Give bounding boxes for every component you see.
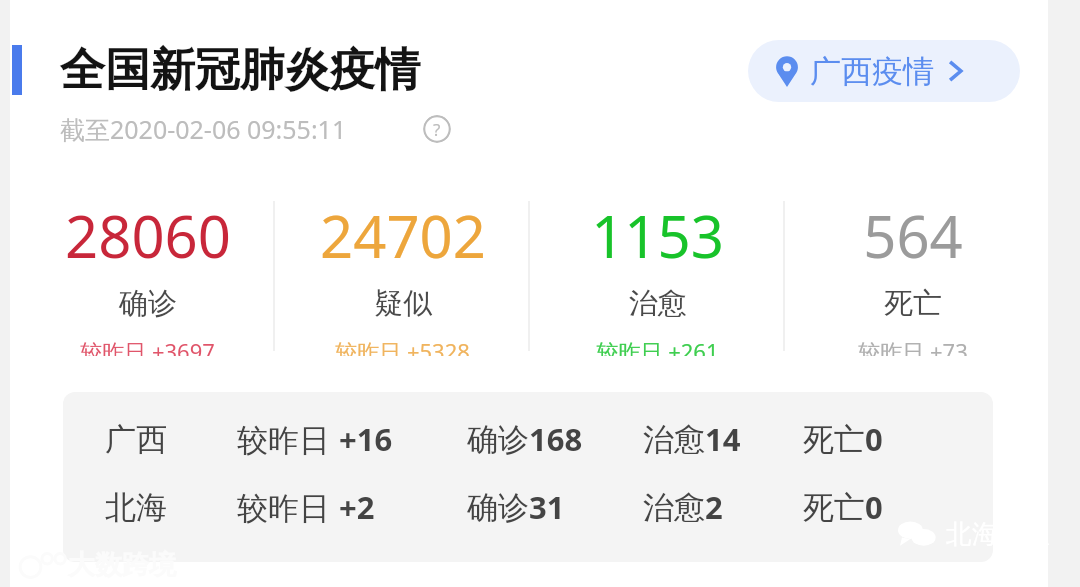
staticText: 截至2020-02-06 09:55:11 <box>60 112 347 146</box>
staticText: 较昨日 +5328 <box>335 336 470 356</box>
button[interactable]: Help <box>423 115 451 143</box>
staticText: 北海 <box>105 488 167 527</box>
staticText: 确诊 <box>467 420 529 459</box>
staticText: 治愈 <box>643 420 705 459</box>
staticText: 全国新冠肺炎疫情 <box>60 42 420 99</box>
staticText: 1153 <box>591 196 724 275</box>
staticText: 24702 <box>320 196 486 275</box>
staticText: 0 <box>865 418 883 460</box>
staticText: 168 <box>529 418 583 460</box>
staticText: 确诊 <box>119 285 177 322</box>
staticText: 治愈 <box>643 488 705 527</box>
staticText: 确诊 <box>467 488 529 527</box>
staticText: 14 <box>705 418 741 460</box>
staticText: 较昨日 +3697 <box>80 336 215 356</box>
staticText: 北海阿叔 <box>946 518 1050 551</box>
staticText: 死亡 <box>803 488 865 527</box>
staticText: 0 <box>865 486 883 528</box>
staticText: 广西疫情 <box>810 52 934 91</box>
staticText: 较昨日 <box>237 486 339 528</box>
staticText: 较昨日 +261 <box>596 336 719 356</box>
staticText: 死亡 <box>803 420 865 459</box>
staticText: +16 <box>339 418 393 460</box>
staticText: 564 <box>863 196 963 275</box>
staticText: 大数跨境 <box>68 548 176 582</box>
staticText: +2 <box>339 486 375 528</box>
staticText: 31 <box>529 486 565 528</box>
staticText: 较昨日 <box>237 418 339 460</box>
staticText: 治愈 <box>629 285 687 322</box>
staticText: 死亡 <box>884 285 942 322</box>
button[interactable]: 广西 <box>63 392 993 562</box>
staticText: 较昨日 +73 <box>858 336 968 356</box>
staticText: 疑似 <box>374 285 432 322</box>
staticText: 2 <box>705 486 723 528</box>
staticText: 28060 <box>65 196 231 275</box>
staticText: ? <box>433 118 441 141</box>
staticText: 广西 <box>105 420 167 459</box>
button[interactable]: 广西疫情 <box>748 40 1020 102</box>
